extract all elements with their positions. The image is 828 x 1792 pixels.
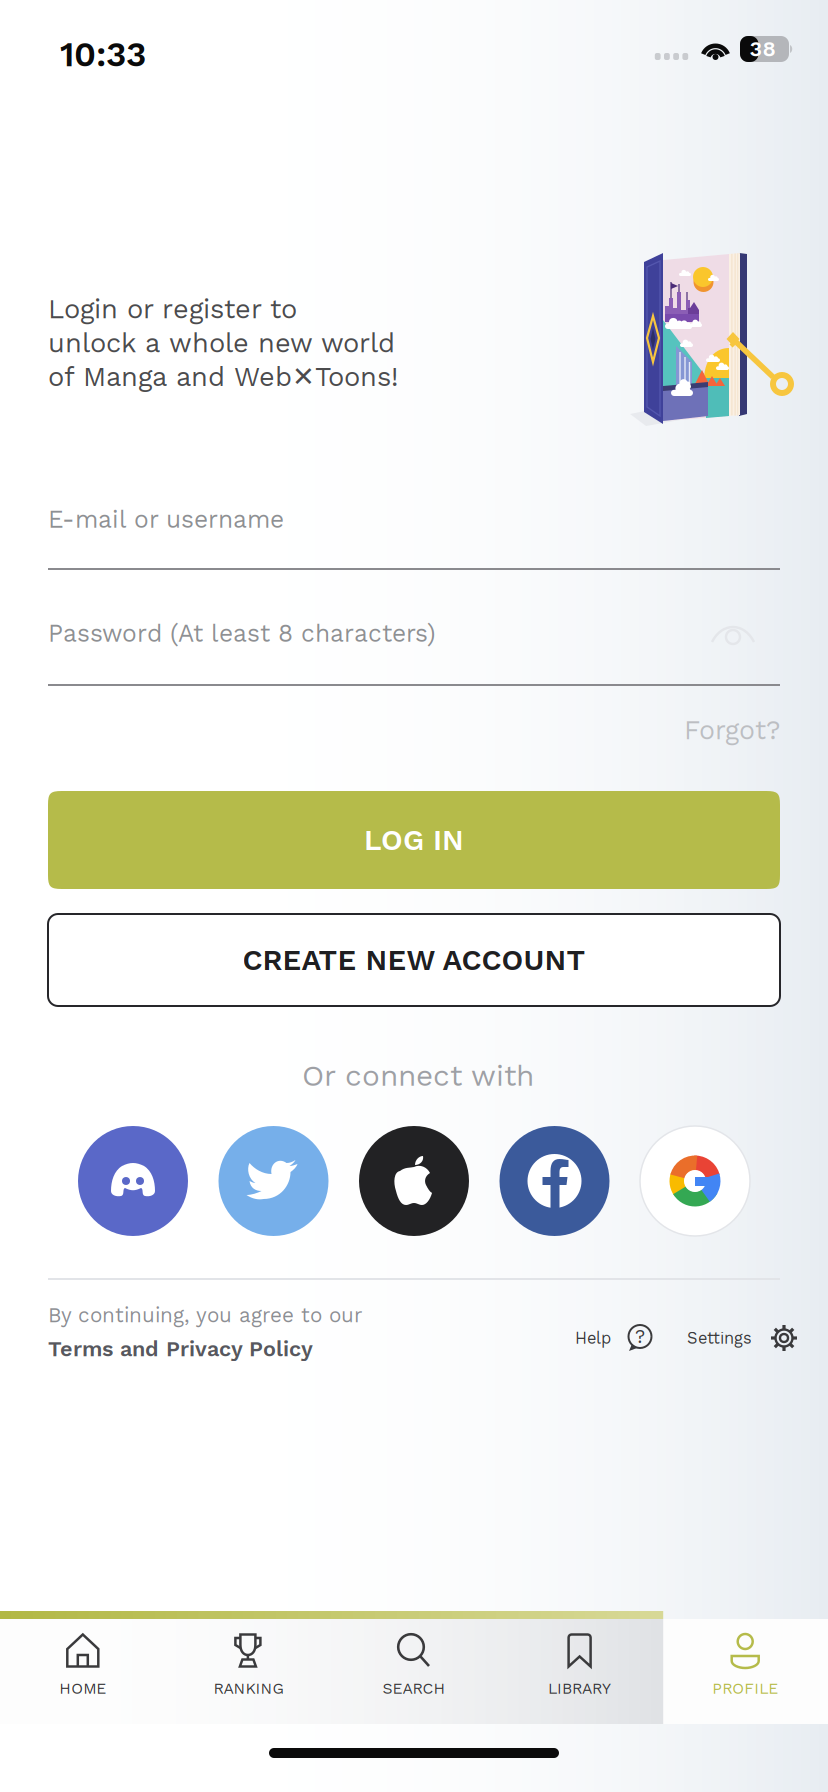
- staticText: 10:33: [60, 34, 146, 75]
- button[interactable]: Sign in with Discord: [78, 1126, 188, 1236]
- staticText: Or connect with: [302, 1058, 534, 1093]
- button[interactable]: LIBRARY: [497, 1619, 662, 1723]
- staticText: LOG IN: [364, 823, 464, 857]
- button[interactable]: PROFILE: [662, 1619, 828, 1723]
- button[interactable]: Sign in with Google: [640, 1126, 750, 1236]
- staticText: CREATE NEW ACCOUNT: [242, 943, 585, 977]
- staticText: Password (At least 8 characters): [48, 619, 436, 648]
- button[interactable]: CREATE NEW ACCOUNT: [48, 914, 780, 1006]
- button[interactable]: SEARCH: [331, 1619, 497, 1723]
- button[interactable]: LOG IN: [48, 791, 780, 889]
- staticText: By continuing, you agree to our: [48, 1303, 362, 1327]
- button[interactable]: HOME: [0, 1619, 166, 1723]
- staticText: RANKING: [213, 1679, 283, 1697]
- button[interactable]: Sign in with Twitter: [218, 1126, 328, 1236]
- button[interactable]: Settings: [687, 1318, 798, 1358]
- staticText: Terms and Privacy Policy: [48, 1336, 313, 1361]
- staticText: PROFILE: [712, 1679, 778, 1697]
- staticText: HOME: [59, 1679, 106, 1697]
- staticText: SEARCH: [382, 1679, 445, 1697]
- button[interactable]: Help: [575, 1318, 654, 1358]
- staticText: Settings: [687, 1328, 752, 1348]
- staticText: Login or register to unlock a whole new …: [48, 293, 398, 393]
- staticText: E-mail or username: [48, 505, 284, 534]
- button[interactable]: Sign in with Apple: [359, 1126, 469, 1236]
- staticText: LIBRARY: [548, 1679, 611, 1697]
- staticText: Help: [575, 1328, 611, 1348]
- button[interactable]: RANKING: [166, 1619, 331, 1723]
- staticText: 38: [749, 36, 775, 61]
- staticText: ?: [635, 1326, 645, 1347]
- staticText: Forgot?: [684, 714, 780, 746]
- button[interactable]: Sign in with Facebook: [499, 1126, 609, 1236]
- button[interactable]: Forgot?: [680, 710, 780, 750]
